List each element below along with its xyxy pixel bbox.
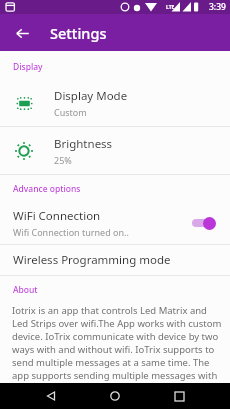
staticText: Custom bbox=[54, 106, 87, 118]
button[interactable]: Back bbox=[38, 383, 64, 409]
button[interactable]: WiFi Connection toggle bbox=[190, 214, 220, 232]
staticText: Wireless Programming mode bbox=[13, 252, 171, 268]
staticText: Brightness bbox=[54, 136, 113, 152]
button[interactable]: Recents bbox=[166, 383, 192, 409]
staticText: Settings bbox=[50, 23, 107, 43]
staticText: Wifi Connection turned on.. bbox=[13, 226, 129, 238]
staticText: 3:39 bbox=[209, 1, 226, 13]
staticText: Display bbox=[13, 61, 43, 73]
button[interactable]: Brightness bbox=[0, 127, 230, 174]
staticText: Advance options bbox=[13, 183, 81, 195]
staticText: 25% bbox=[54, 154, 72, 166]
staticText: WiFi Connection bbox=[13, 208, 101, 224]
button[interactable]: WiFi Connection bbox=[0, 201, 230, 244]
staticText: About bbox=[13, 284, 38, 296]
button[interactable]: Back bbox=[8, 19, 36, 47]
button[interactable]: Display Mode bbox=[0, 79, 230, 126]
button[interactable]: Wireless Programming mode bbox=[0, 245, 230, 275]
staticText: Iotrix is an app that controls Led Matri… bbox=[12, 304, 224, 383]
staticText: Display Mode bbox=[54, 88, 128, 104]
staticText: LTE bbox=[166, 4, 175, 11]
button[interactable]: Home bbox=[102, 383, 128, 409]
